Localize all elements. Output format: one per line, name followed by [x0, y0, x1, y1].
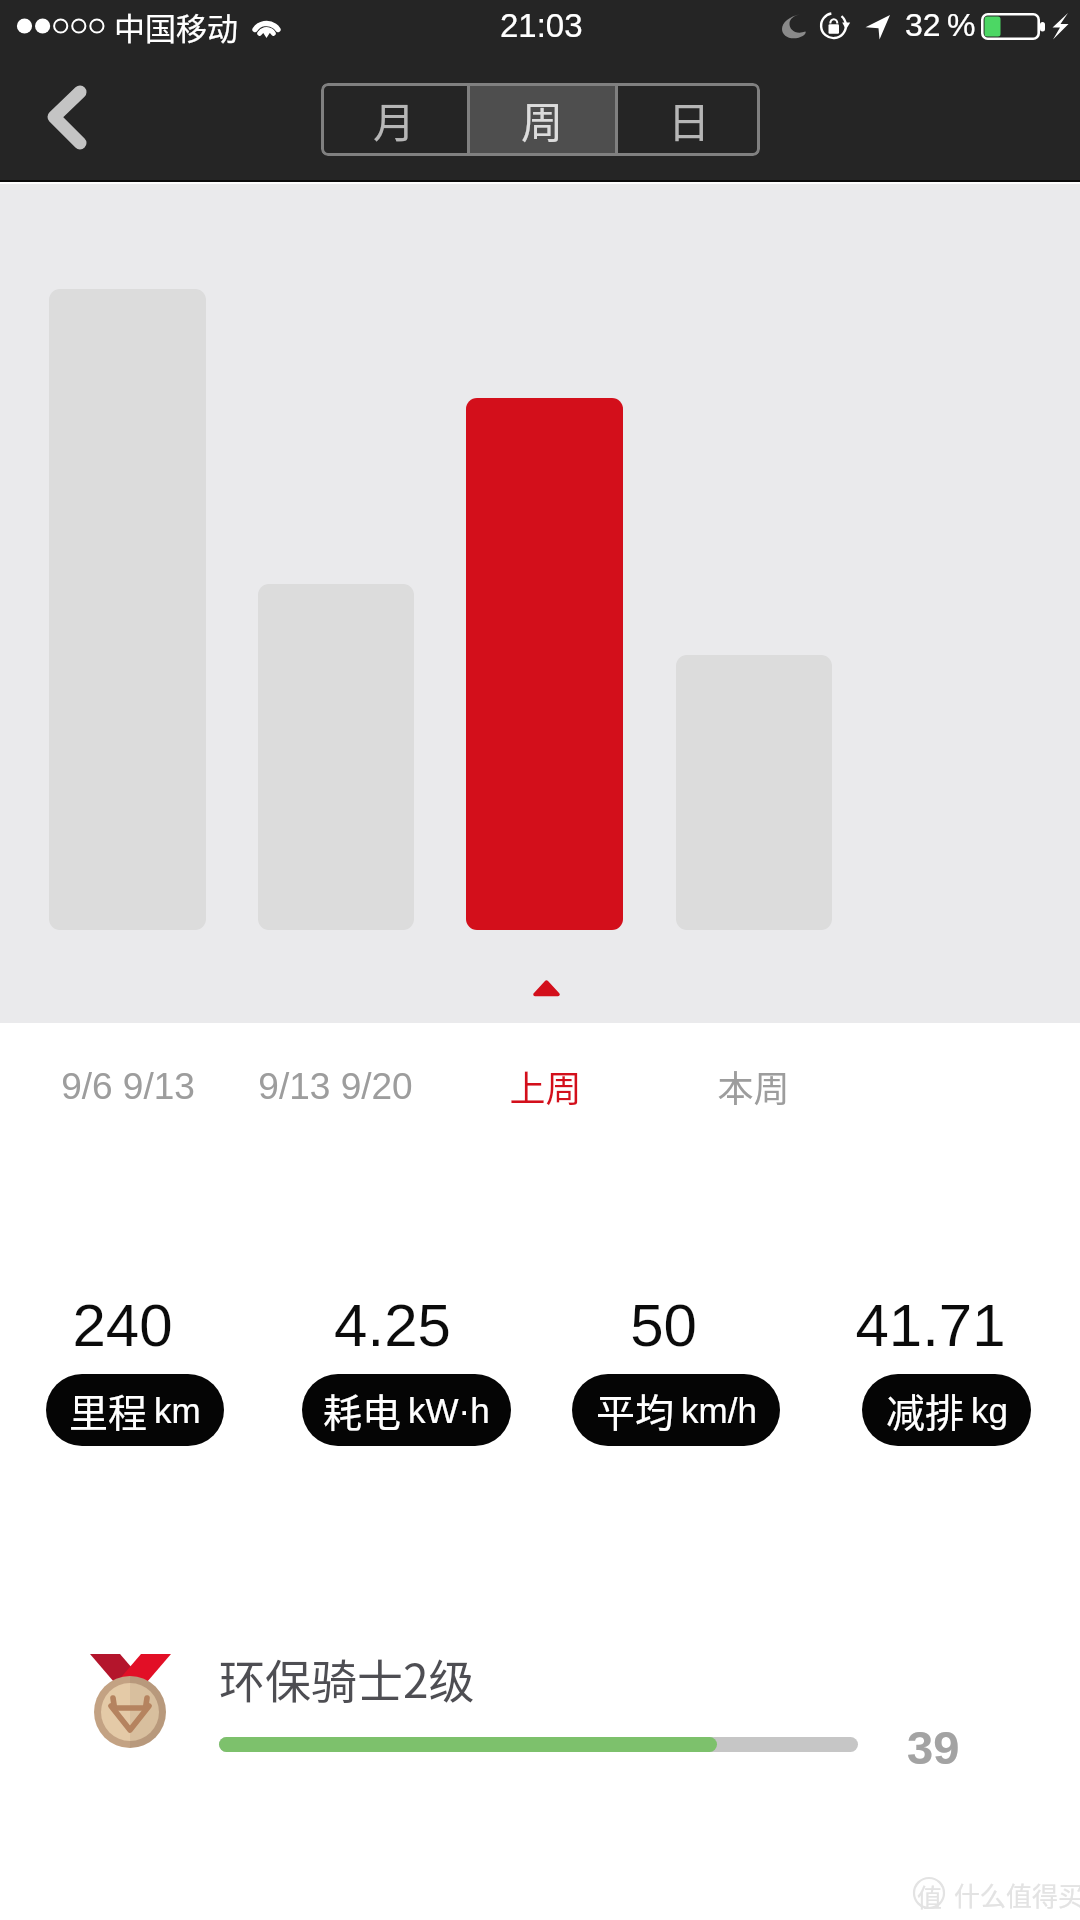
staticText: kg	[971, 1391, 1008, 1430]
staticText: 50	[630, 1292, 697, 1359]
staticText: 日	[668, 89, 711, 150]
staticText: 什么值得买	[954, 1876, 1080, 1914]
staticText: 减排	[886, 1382, 965, 1438]
staticText: 9/6 9/13	[61, 1066, 195, 1107]
staticText: 月	[373, 89, 416, 150]
staticText: 环保骑士2级	[219, 1645, 475, 1712]
staticText: 32 %	[905, 7, 976, 43]
staticText: 耗电	[323, 1382, 402, 1438]
staticText: 本周	[717, 1060, 790, 1112]
button[interactable]: 平均	[572, 1374, 780, 1446]
staticText: km/h	[681, 1391, 757, 1430]
button[interactable]: 里程	[46, 1374, 224, 1446]
staticText: 21:03	[500, 7, 583, 44]
staticText: 41.71	[855, 1292, 1006, 1359]
button[interactable]: 耗电	[302, 1374, 511, 1446]
button[interactable]: 9/6 9/13	[0, 1066, 278, 1126]
staticText: 值	[917, 1878, 943, 1914]
staticText: 中国移动	[114, 4, 238, 49]
staticText: km	[154, 1391, 201, 1430]
staticText: kW·h	[408, 1391, 490, 1430]
staticText: 平均	[596, 1382, 675, 1438]
staticText: 4.25	[334, 1292, 451, 1359]
button[interactable]: 9/13 9/20	[185, 1066, 485, 1126]
staticText: 里程	[69, 1382, 148, 1438]
button[interactable]: 日	[618, 83, 760, 156]
button[interactable]: Back	[20, 70, 110, 165]
staticText: 9/13 9/20	[258, 1066, 413, 1107]
button[interactable]: 减排	[862, 1374, 1031, 1446]
staticText: 周	[521, 89, 564, 150]
button[interactable]: 周	[470, 83, 615, 156]
button[interactable]: 上周	[395, 1060, 695, 1120]
staticText: 240	[72, 1292, 173, 1359]
button[interactable]: 本周	[603, 1060, 903, 1120]
staticText: 上周	[509, 1060, 582, 1112]
button[interactable]: 月	[321, 83, 467, 156]
staticText: 39	[907, 1721, 960, 1774]
